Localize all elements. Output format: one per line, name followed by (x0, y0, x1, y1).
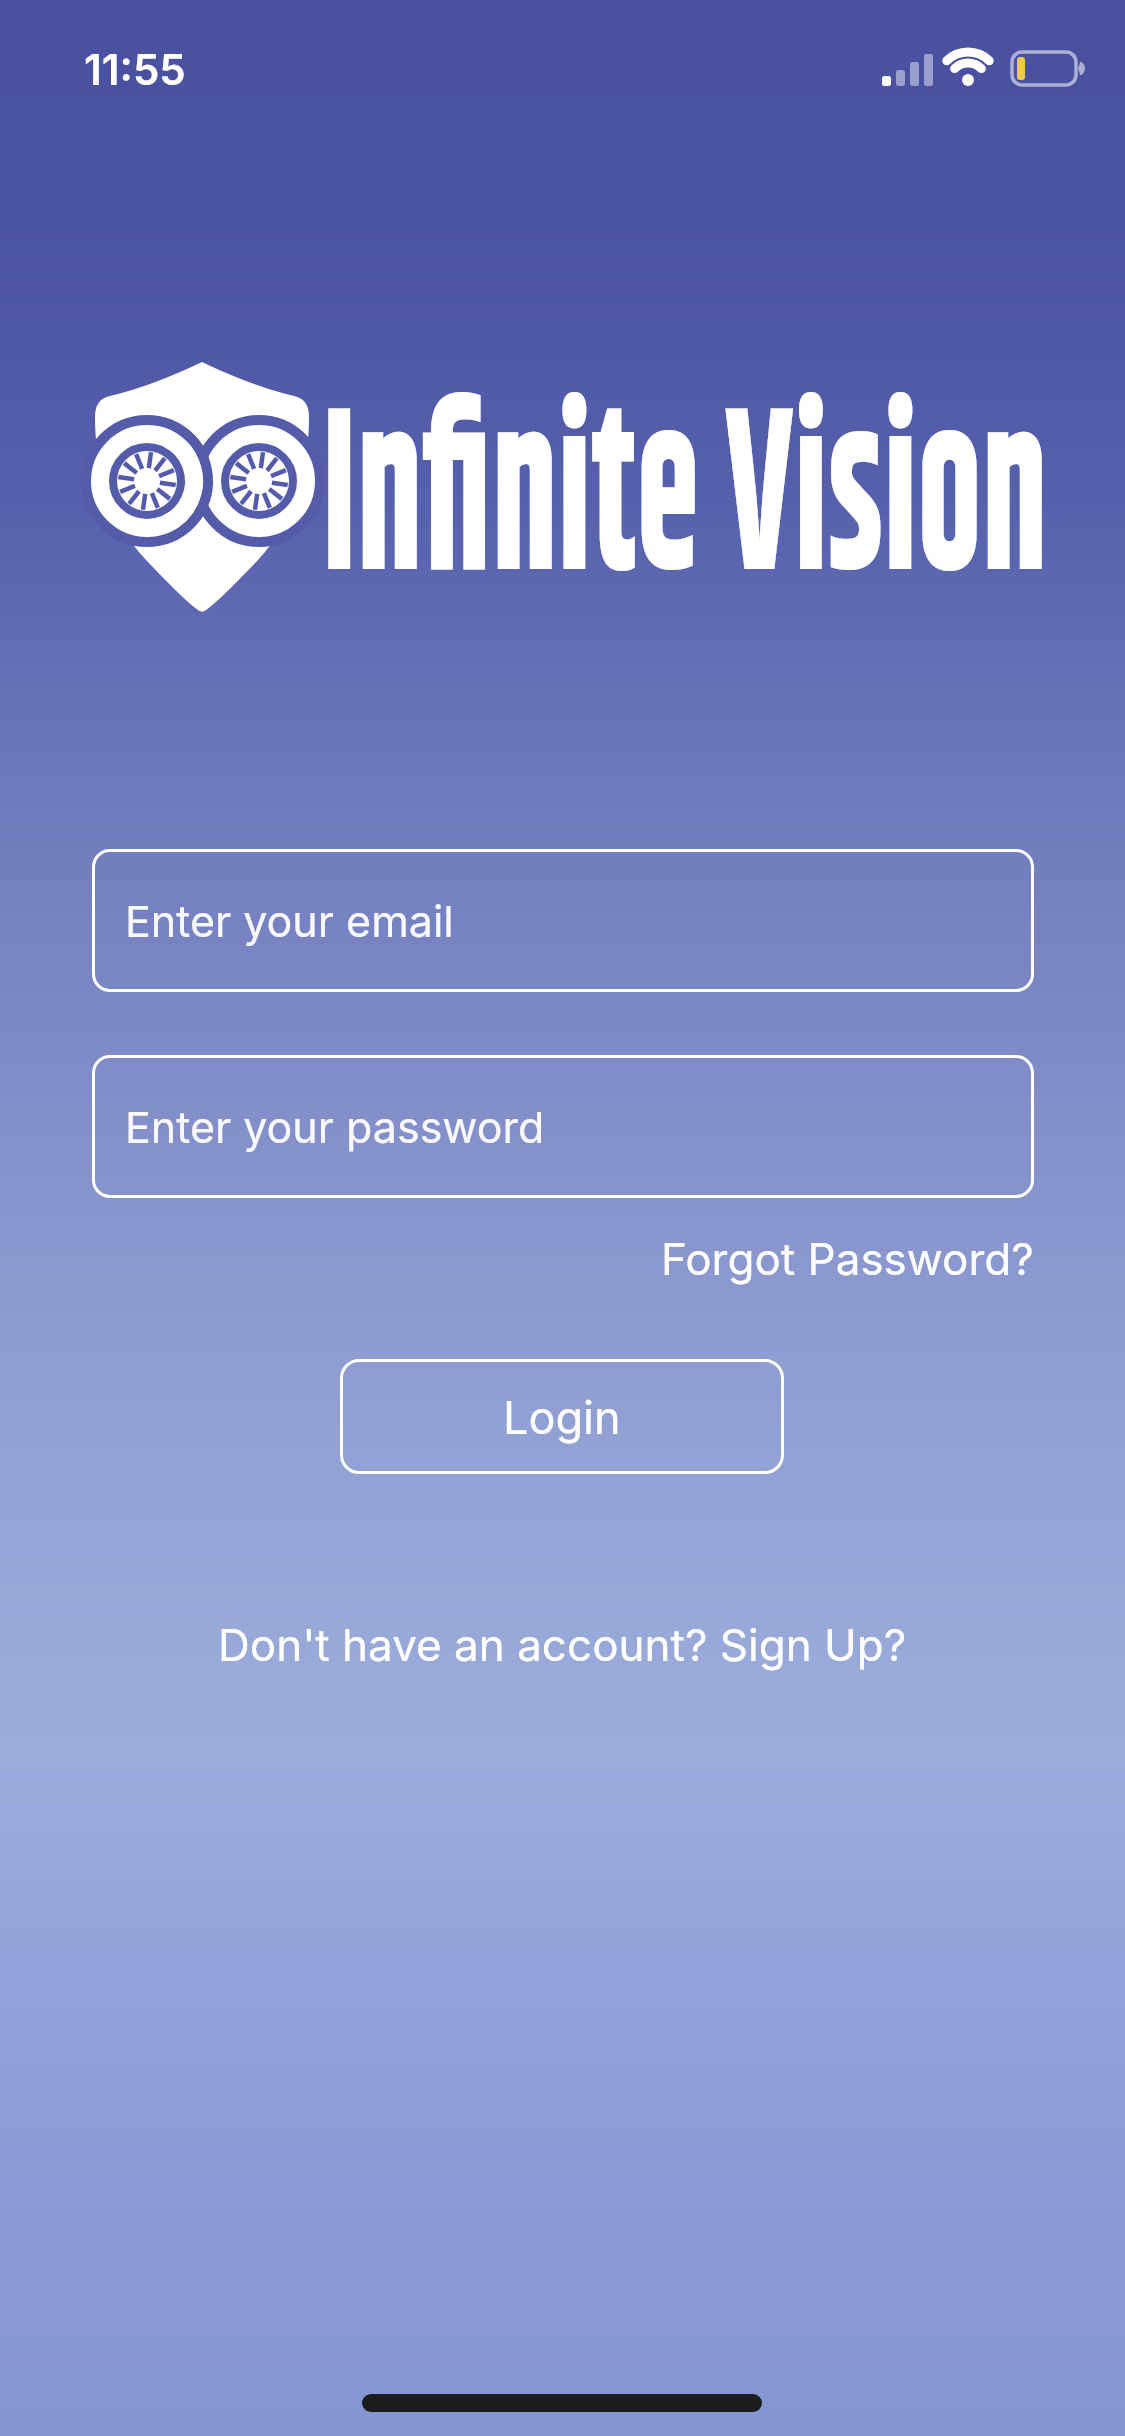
staticText: Enter your email (125, 895, 454, 947)
staticText: Infinite Vision (322, 325, 1048, 680)
staticText: Don't have an account? Sign Up? (218, 1618, 907, 1671)
button[interactable]: Login (340, 1359, 784, 1474)
staticText: Forgot Password? (661, 1232, 1034, 1285)
button[interactable]: Don't have an account? Sign Up? (0, 1613, 1125, 1675)
staticText: Enter your password (125, 1101, 545, 1153)
button[interactable]: Enter your password (92, 1055, 1034, 1198)
button[interactable]: Enter your email (92, 849, 1034, 992)
staticText: 11:55 (84, 44, 186, 95)
staticText: Login (503, 1390, 621, 1444)
button[interactable]: Forgot Password? (434, 1226, 1034, 1290)
